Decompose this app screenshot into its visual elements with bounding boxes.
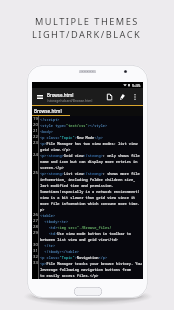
staticText: between list view and grid view</td> <box>40 237 118 242</box>
staticText: 26 <box>33 212 38 218</box>
staticText: last modified time and permission. <box>40 183 114 188</box>
staticText: grid view.</p> <box>40 147 71 152</box>
staticText: <td>Use view mode button in toolbar to s… <box>40 231 143 236</box>
staticText: Browse.html <box>34 108 62 114</box>
staticText: view is a bit slower than grid view sinc… <box>40 195 143 200</box>
staticText: more file information which consume more… <box>40 201 143 206</box>
staticText: <p>File Manager has two view modes: list… <box>40 141 143 146</box>
staticText: Browse.html <box>47 92 74 98</box>
staticText: <p class="Topic">New Mode</p> <box>40 135 103 140</box>
staticText: LIGHT/DARK/BLACK <box>32 28 142 41</box>
staticText: Sometimes(especially in a network enviro… <box>40 189 143 194</box>
staticText: name and icon but can display more entri… <box>40 159 143 164</box>
staticText: <body> <box>40 129 53 134</box>
staticText: screen.</p> <box>40 165 64 170</box>
staticText: leverage following navigation buttons fr… <box>40 267 143 272</box>
staticText: 22 <box>33 134 38 140</box>
staticText: <td><img src="./Browse_files/List_view.p… <box>40 225 143 230</box>
staticText: information, including folder children s… <box>40 177 143 182</box>
staticText: </tbody></table> <box>40 249 79 254</box>
staticText: 28 <box>33 224 38 230</box>
staticText: </script> <box>40 117 60 122</box>
button[interactable]: Edit <box>116 88 129 105</box>
staticText: MULTIPLE THEMES <box>35 15 139 28</box>
staticText: <style type="text/css"></style> <box>40 123 108 128</box>
button[interactable]: More options <box>129 88 140 105</box>
staticText: 29 <box>33 230 38 236</box>
button[interactable]: Open navigation drawer <box>32 88 47 105</box>
staticText: 25 <box>33 170 38 176</box>
button[interactable]: Browse.html <box>32 106 143 116</box>
staticText: p> <box>40 207 45 212</box>
staticText: <p><strong>Grid view</strong>: only show… <box>40 153 140 158</box>
staticText: 30 <box>33 242 38 248</box>
staticText: /storage/sdcard/Browse.html <box>47 98 93 102</box>
staticText: 23 <box>33 140 38 146</box>
staticText: 24 <box>33 152 38 158</box>
staticText: 31 <box>33 248 38 254</box>
staticText: </tr> <box>40 243 56 248</box>
staticText: to easily access files.</p> <box>40 273 99 278</box>
staticText: <p><strong>List view</strong>: shows mor… <box>40 171 140 176</box>
staticText: 33 <box>33 260 38 266</box>
staticText: <table> <box>40 213 56 218</box>
staticText: <tbody><tr> <box>40 219 69 224</box>
staticText: 32 <box>33 254 38 260</box>
staticText: <p class="Topic">Navigation</p> <box>40 255 108 260</box>
button[interactable]: New file <box>102 88 116 105</box>
staticText: 20 <box>33 122 38 128</box>
staticText: <p>File Manager tracks your browse histo… <box>40 261 143 266</box>
staticText: 5:35 <box>132 82 141 88</box>
staticText: 27 <box>33 218 38 224</box>
staticText: 19 <box>33 116 38 122</box>
staticText: 21 <box>33 128 38 134</box>
